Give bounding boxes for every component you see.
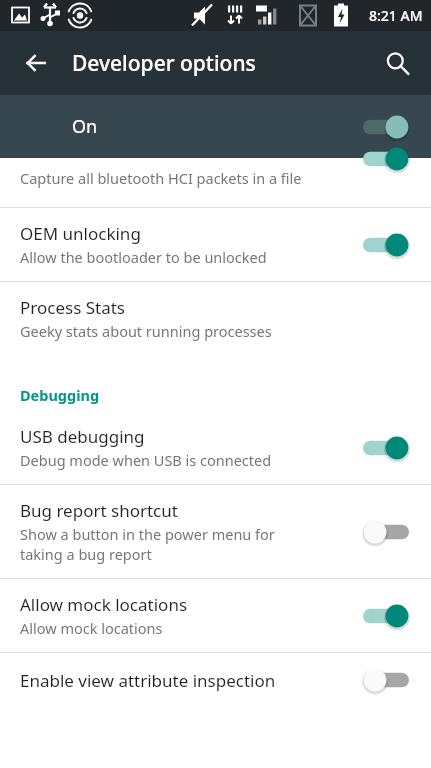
staticText: Developer options [72,49,256,78]
button[interactable]: Back [12,39,60,87]
staticText: Enable view attribute inspection [20,669,276,692]
button[interactable]: On [363,232,409,258]
staticText: On [72,114,98,139]
button[interactable]: Process Stats [0,282,431,355]
staticText: Geeky stats about running processes [20,321,272,341]
button[interactable]: On [363,435,409,461]
staticText: 8:21 AM [369,6,423,25]
button[interactable]: Off [363,519,409,545]
button[interactable]: On [0,95,431,158]
button[interactable]: Allow mock locations [0,579,431,652]
staticText: Process Stats [20,296,125,319]
staticText: Show a button in the power menu for taki… [20,524,275,564]
staticText: Bug report shortcut [20,499,178,522]
staticText: USB debugging [20,425,145,448]
button[interactable]: On [363,146,409,172]
staticText: Debug mode when USB is connected [20,450,272,470]
button[interactable]: Search [373,39,421,87]
button[interactable]: OEM unlocking [0,208,431,281]
button[interactable]: Off [363,667,409,693]
button[interactable]: Enable view attribute inspection [0,653,431,707]
staticText: Capture all bluetooth HCI packets in a f… [20,168,302,188]
button[interactable]: USB debugging [0,411,431,484]
button[interactable]: Bug report shortcut [0,485,431,578]
button[interactable]: On [363,114,409,140]
staticText: Allow mock locations [20,618,163,638]
staticText: OEM unlocking [20,222,141,245]
staticText: Debugging [20,385,100,405]
staticText: Allow the bootloader to be unlocked [20,247,267,267]
staticText: Allow mock locations [20,593,188,616]
button[interactable]: On [363,603,409,629]
